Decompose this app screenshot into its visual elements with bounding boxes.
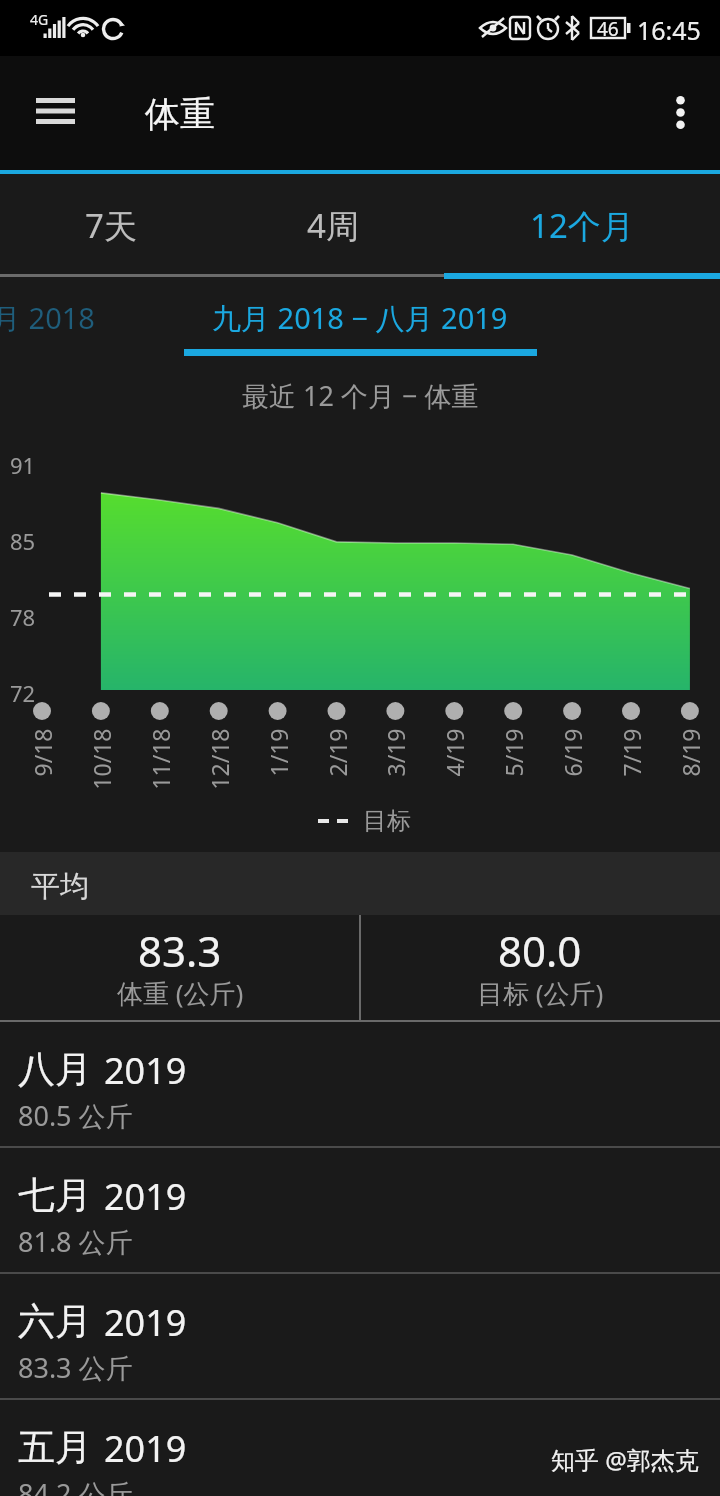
staticText: 2019 [104,1046,187,1095]
staticText: 16:45 [637,13,701,47]
staticText: 83.3 [138,922,222,979]
staticText: 七月 [18,1172,92,1219]
staticText: 78 [10,602,36,632]
staticText: 4G [30,10,49,29]
staticText: 10/18 [85,728,116,818]
staticText: 46 [597,16,619,42]
staticText: 五月 [18,1424,92,1471]
staticText: 84.2 公斤 [18,1475,133,1496]
staticText: 72 [10,678,36,708]
staticText: 12/18 [203,728,234,818]
button[interactable]: More options [645,77,715,147]
button[interactable]: 83.3 [0,915,360,1020]
staticText: 2/19 [321,728,352,818]
staticText: 平均 [31,868,89,905]
staticText: 九月 2018 − 八月 2019 [212,298,508,338]
staticText: 1/19 [262,728,293,818]
staticText: 2019 [104,1298,187,1347]
staticText: 6/19 [556,728,587,818]
staticText: 9/18 [26,728,57,818]
staticText: 91 [10,450,36,480]
staticText: 5/19 [497,728,528,818]
staticText: 80.5 公斤 [18,1097,133,1134]
staticText: 月 2018 [0,298,95,338]
staticText: 3/19 [379,728,410,818]
staticText: 85 [10,526,36,556]
staticText: 2019 [104,1424,187,1473]
staticText: 11/18 [144,728,175,818]
staticText: 目标 (公斤) [477,975,604,1011]
staticText: 7/19 [615,728,646,818]
staticText: 知乎 @郭杰克 [551,1443,699,1476]
staticText: 2019 [104,1172,187,1221]
button[interactable]: 八月 [0,1022,720,1146]
staticText: 体重 (公斤) [117,975,244,1011]
staticText: 4/19 [438,728,469,818]
staticText: 六月 [18,1298,92,1345]
button[interactable]: Open navigation menu [13,69,97,153]
staticText: 八月 [18,1046,92,1093]
button[interactable]: 80.0 [360,915,720,1020]
staticText: 4周 [307,203,359,248]
staticText: 81.8 公斤 [18,1223,133,1260]
button[interactable]: 五月 [0,1400,720,1496]
staticText: 8/19 [674,728,705,818]
staticText: 80.0 [498,922,582,979]
button[interactable]: 七月 [0,1148,720,1272]
button[interactable]: 12个月 [444,174,720,279]
staticText: 7天 [85,203,137,248]
button[interactable]: 六月 [0,1274,720,1398]
button[interactable]: 4周 [222,174,444,279]
staticText: 83.3 公斤 [18,1349,133,1386]
staticText: 体重 [145,92,215,136]
staticText: 12个月 [530,203,634,248]
staticText: 最近 12 个月 − 体重 [242,377,479,414]
staticText: 目标 [363,806,411,836]
button[interactable]: 7天 [0,174,222,279]
